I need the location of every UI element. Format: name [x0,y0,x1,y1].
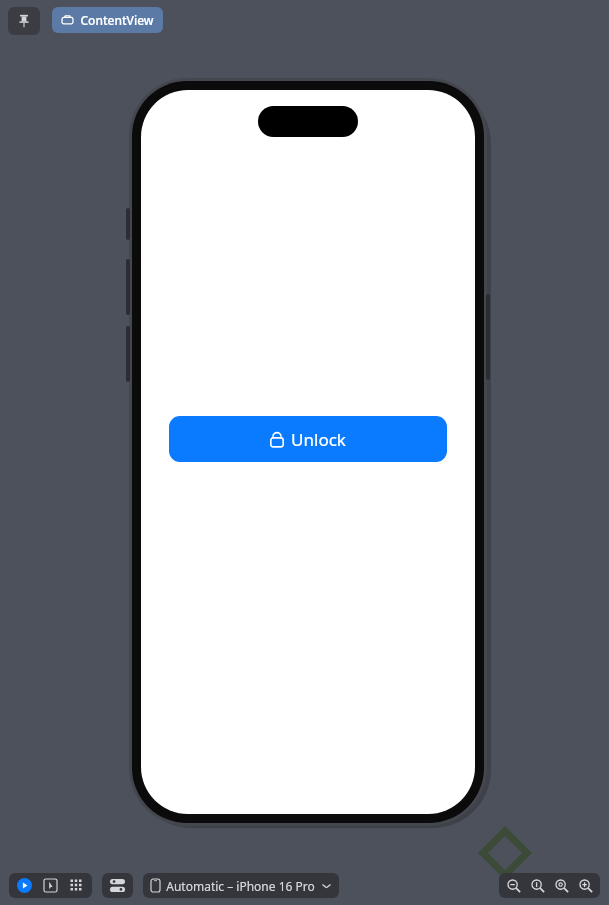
button[interactable]: Preview settings [102,873,133,898]
button[interactable]: Variants [68,877,85,894]
button[interactable]: Play preview [16,877,33,894]
button[interactable]: Automatic – iPhone 16 Pro [143,873,339,898]
button[interactable]: Zoom to fit [553,877,570,894]
button[interactable]: Zoom out [505,877,522,894]
button[interactable]: Zoom in [577,877,594,894]
button[interactable]: Pin preview [8,7,40,35]
staticText: Unlock [291,428,346,451]
button[interactable]: Actual size [529,877,546,894]
staticText: ContentView [80,12,154,28]
button[interactable]: Select element [42,877,59,894]
button[interactable]: Unlock [169,416,447,462]
button[interactable]: ContentView [52,7,163,33]
staticText: Automatic – iPhone 16 Pro [166,878,315,894]
